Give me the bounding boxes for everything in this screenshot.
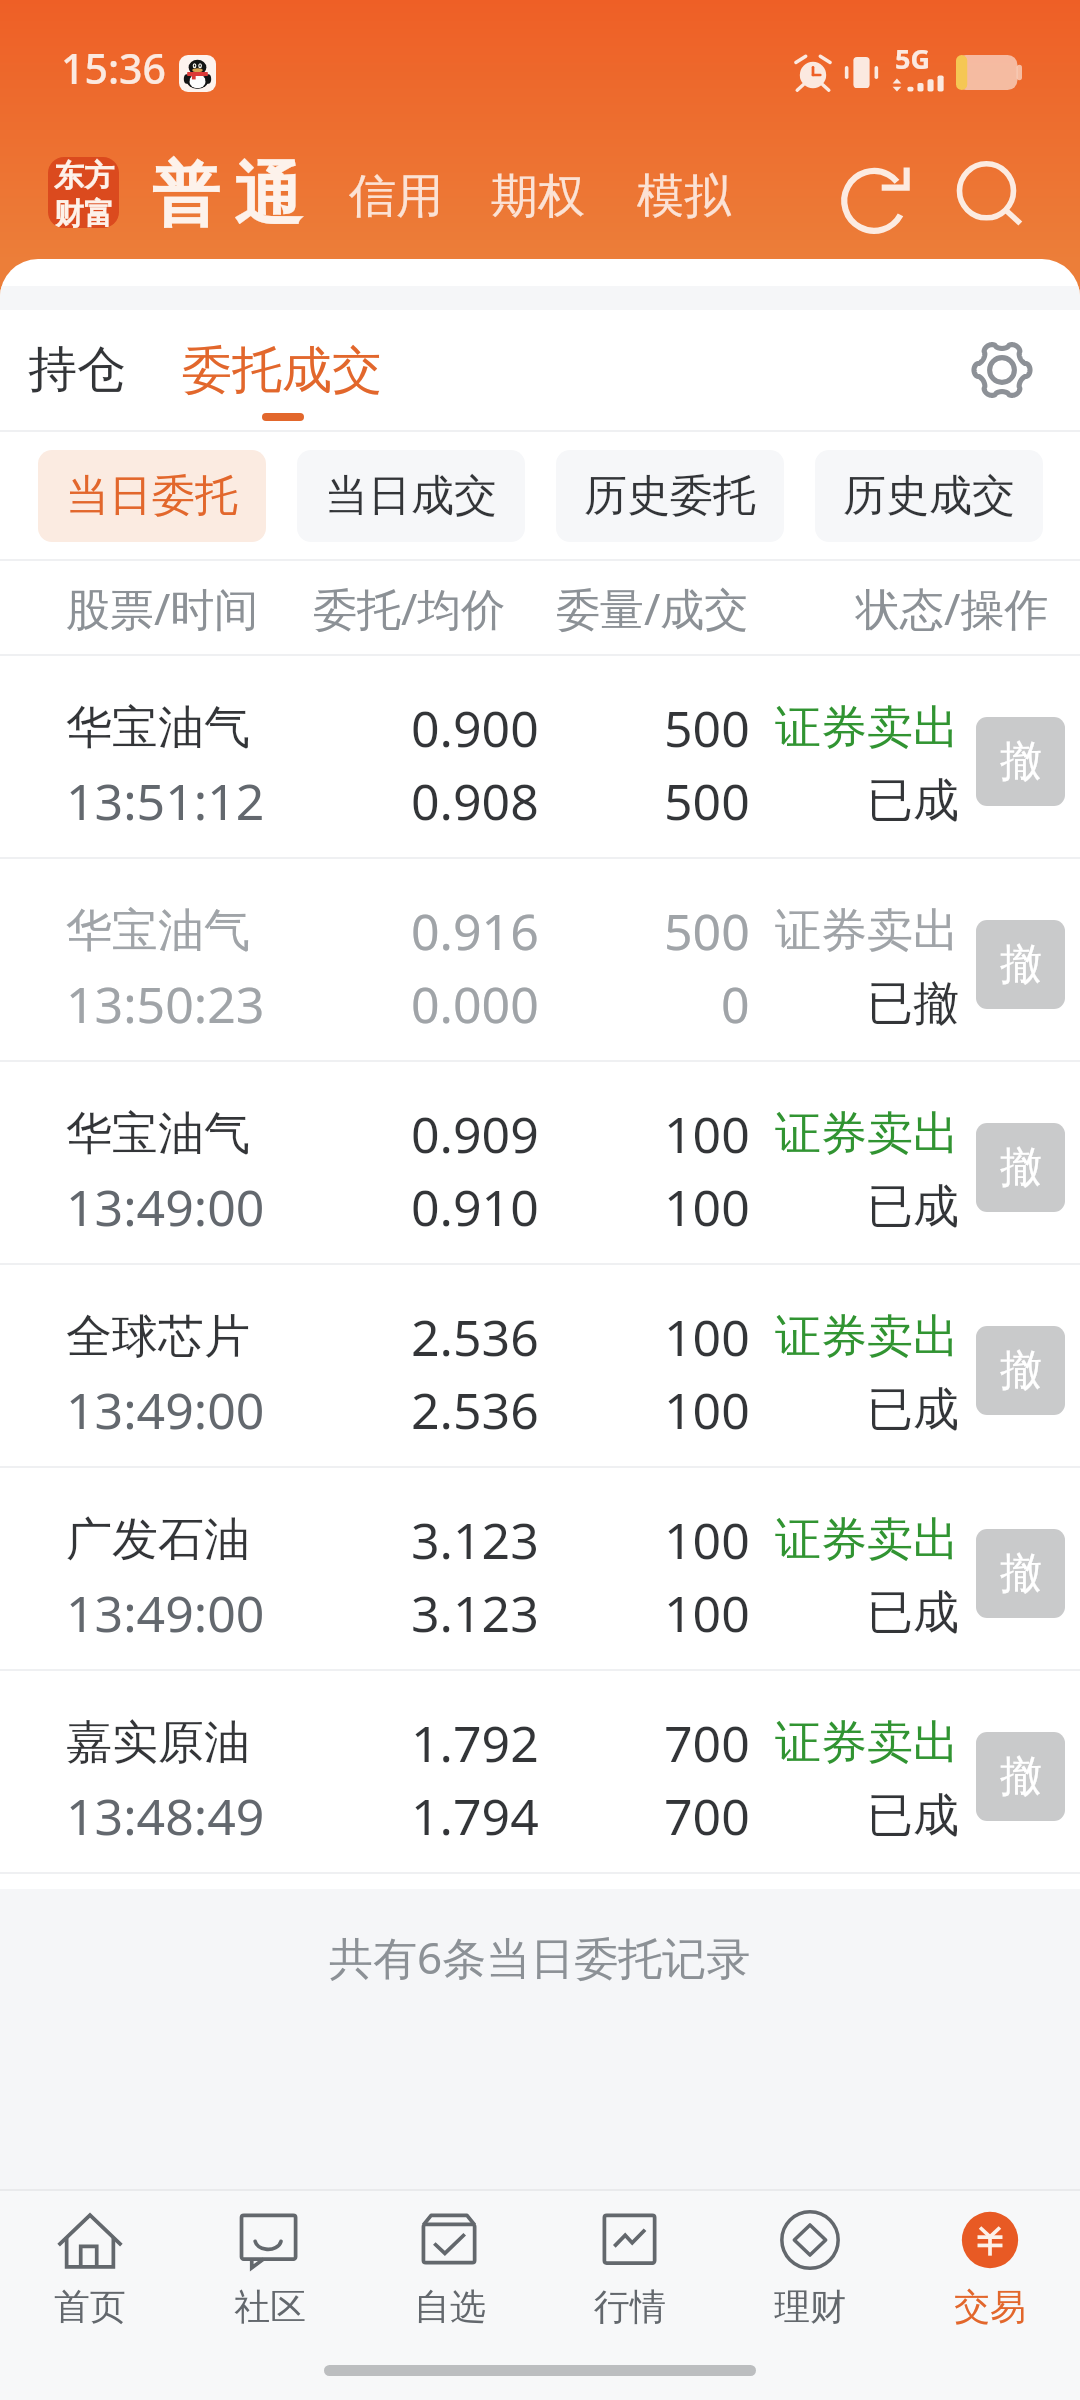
staticText: 持仓 [28,339,126,401]
staticText: 撤 [1000,938,1042,991]
button[interactable]: 历史委托 [556,450,784,542]
staticText: 模拟 [637,167,731,226]
staticText: 社区 [234,2284,306,2329]
button[interactable]: 委托成交 [154,310,410,430]
staticText: 普通 [145,153,309,239]
staticText: 历史成交 [843,469,1015,523]
staticText: 1.794 [411,1782,539,1850]
staticText: 700 [664,1709,750,1777]
staticText: 证券卖出 [775,902,959,960]
button[interactable]: 华宝油气 [0,859,1080,1062]
button[interactable]: 当日委托 [38,450,266,542]
staticText: 15:36 [61,40,166,96]
staticText: 理财 [774,2284,846,2329]
button[interactable]: 撤 [976,1326,1065,1415]
staticText: 1.792 [411,1709,539,1777]
staticText: 首页 [54,2284,126,2329]
staticText: 撤 [1000,735,1042,788]
staticText: 华宝油气 [66,1105,250,1163]
staticText: 委量/成交 [556,578,749,638]
button[interactable]: 撤 [976,1123,1065,1212]
button[interactable]: 当日成交 [297,450,525,542]
staticText: 当日委托 [66,469,238,523]
staticText: 0.909 [411,1100,539,1168]
button[interactable]: 行情 [540,2213,720,2353]
staticText: 0.000 [411,970,539,1038]
staticText: 已成 [867,772,959,830]
staticText: 13:51:12 [66,767,265,835]
button[interactable]: 撤 [976,920,1065,1009]
staticText: 交易 [954,2284,1026,2329]
staticText: 已撤 [867,975,959,1033]
staticText: 嘉实原油 [66,1714,250,1772]
staticText: 撤 [1000,1141,1042,1194]
staticText: 撤 [1000,1344,1042,1397]
staticText: 13:49:00 [66,1579,265,1647]
button[interactable]: 期权 [491,130,585,262]
staticText: 已成 [867,1381,959,1439]
button[interactable]: 首页 [0,2213,180,2353]
staticText: 全球芯片 [66,1308,250,1366]
staticText: 100 [664,1303,750,1371]
button[interactable]: Refresh [832,153,922,243]
staticText: 13:48:49 [66,1782,265,1850]
button[interactable]: 模拟 [637,130,731,262]
button[interactable]: 社区 [180,2213,360,2353]
button[interactable]: 华宝油气 [0,1062,1080,1265]
button[interactable]: 交易 [900,2213,1080,2353]
staticText: 100 [664,1173,750,1241]
staticText: 行情 [594,2284,666,2329]
button[interactable]: 撤 [976,717,1065,806]
button[interactable]: 持仓 [0,310,154,430]
staticText: 0.910 [411,1173,539,1241]
staticText: 当日成交 [325,469,497,523]
staticText: 0.916 [411,897,539,965]
staticText: 3.123 [411,1579,539,1647]
button[interactable]: 自选 [360,2213,540,2353]
staticText: 3.123 [411,1506,539,1574]
staticText: 证券卖出 [775,1511,959,1569]
staticText: 证券卖出 [775,1308,959,1366]
staticText: 0.900 [411,694,539,762]
staticText: 财富 [54,195,114,228]
staticText: 华宝油气 [66,699,250,757]
button[interactable]: 撤 [976,1529,1065,1618]
staticText: 100 [664,1506,750,1574]
button[interactable]: 华宝油气 [0,656,1080,859]
staticText: 撤 [1000,1547,1042,1600]
staticText: 期权 [491,167,585,226]
button[interactable]: Settings [960,328,1044,412]
staticText: 状态/操作 [856,578,1049,638]
button[interactable]: 普通 [145,130,309,262]
button[interactable]: 全球芯片 [0,1265,1080,1468]
staticText: 0 [721,970,750,1038]
staticText: 已成 [867,1178,959,1236]
staticText: 华宝油气 [66,902,250,960]
staticText: 100 [664,1579,750,1647]
staticText: 已成 [867,1584,959,1642]
staticText: 委托成交 [182,339,382,402]
staticText: 2.536 [411,1303,539,1371]
staticText: 500 [664,694,750,762]
staticText: 2.536 [411,1376,539,1444]
staticText: 0.908 [411,767,539,835]
button[interactable]: 广发石油 [0,1468,1080,1671]
button[interactable]: 历史成交 [815,450,1043,542]
button[interactable]: 撤 [976,1732,1065,1821]
staticText: 13:49:00 [66,1376,265,1444]
staticText: 证券卖出 [775,699,959,757]
staticText: 共有6条当日委托记录 [329,1927,751,1987]
staticText: 信用 [349,167,443,226]
staticText: 委托/均价 [313,578,506,638]
staticText: 13:49:00 [66,1173,265,1241]
button[interactable]: 理财 [720,2213,900,2353]
staticText: 500 [664,767,750,835]
staticText: 已成 [867,1787,959,1845]
staticText: 证券卖出 [775,1714,959,1772]
staticText: 13:50:23 [66,970,265,1038]
button[interactable]: 信用 [349,130,443,262]
button[interactable]: Search [944,153,1034,243]
staticText: 证券卖出 [775,1105,959,1163]
staticText: 5G [895,40,930,77]
button[interactable]: 嘉实原油 [0,1671,1080,1874]
